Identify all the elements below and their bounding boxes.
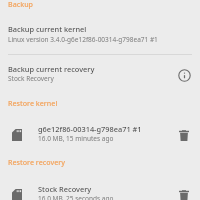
button[interactable]: Backup current kernel [0, 18, 200, 50]
staticText: Backup [8, 0, 33, 9]
button[interactable]: Delete [177, 188, 191, 200]
staticText: g6e12f86-00314-g798ea71 #1 [38, 124, 142, 134]
staticText: 16.0 MB, 15 minutes ago [38, 134, 114, 143]
staticText: Restore recovery [8, 157, 65, 167]
button[interactable]: g6e12f86-00314-g798ea71 #1 [0, 120, 200, 146]
button[interactable]: Info [177, 68, 192, 83]
button[interactable]: Stock Recovery [0, 180, 200, 200]
staticText: Linux version 3.4.0-g6e12f86-00314-g798e… [8, 35, 158, 44]
staticText: Stock Recovery [8, 74, 54, 83]
staticText: 16.0 MB, 25 seconds ago [38, 194, 114, 200]
staticText: Backup current kernel [8, 24, 87, 34]
button[interactable]: Backup current recovery [0, 56, 200, 90]
staticText: Stock Recovery [38, 184, 92, 194]
staticText: Restore kernel [8, 98, 58, 108]
button[interactable]: Delete [177, 128, 191, 142]
staticText: Backup current recovery [8, 64, 95, 74]
